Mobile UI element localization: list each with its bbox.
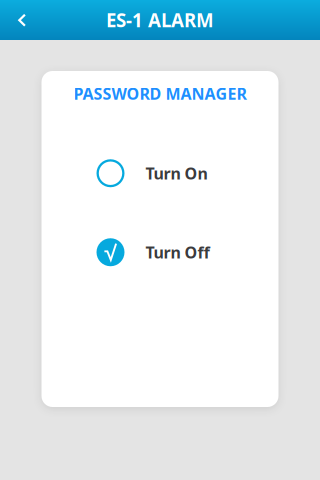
staticText: PASSWORD MANAGER [73,83,246,104]
staticText: Turn Off [145,242,209,263]
button[interactable]: Turn On [96,158,226,188]
button[interactable]: Back [6,0,38,40]
staticText: ES-1 ALARM [106,8,214,32]
staticText: Turn On [145,163,207,184]
button[interactable]: Turn Off [96,237,226,267]
